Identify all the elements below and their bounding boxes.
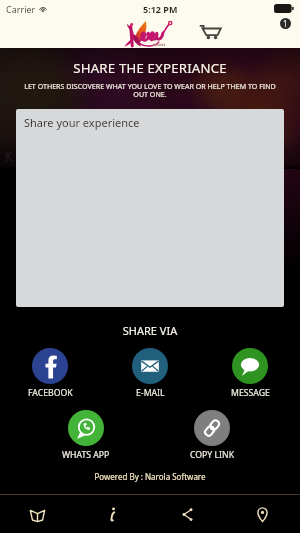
staticText: Share your experience <box>24 115 140 130</box>
staticText: E-MAIL <box>136 387 165 399</box>
button[interactable]: Cart items <box>280 18 291 29</box>
staticText: COPY LINK <box>190 449 235 461</box>
button[interactable]: E-MAIL <box>100 348 200 399</box>
staticText: 5:12 PM <box>143 3 178 15</box>
staticText: SHARE VIA <box>0 323 300 338</box>
button[interactable]: Share <box>150 495 225 533</box>
button[interactable]: Catalogue <box>0 495 75 533</box>
staticText: WHATS APP <box>62 449 110 461</box>
button[interactable]: WHATS APP <box>50 410 122 461</box>
button[interactable]: Stores <box>225 495 300 533</box>
button[interactable]: FACEBOOK <box>0 348 100 399</box>
staticText: Powered By : Narola Software <box>0 471 300 482</box>
staticText: Carrier <box>6 3 36 15</box>
button[interactable]: MESSAGE <box>200 348 300 399</box>
button[interactable]: Cart <box>194 16 226 47</box>
staticText: MESSAGE <box>231 387 270 399</box>
staticText: FACEBOOK <box>28 387 73 399</box>
staticText: LET OTHERS DISCOVERE WHAT YOU LOVE TO WE… <box>20 81 280 99</box>
staticText: SHARE THE EXPERIANCE <box>0 59 300 77</box>
button[interactable]: Info <box>75 495 150 533</box>
button[interactable]: Share your experience <box>16 109 284 307</box>
button[interactable]: COPY LINK <box>176 410 248 461</box>
staticText: 1 <box>283 18 288 29</box>
